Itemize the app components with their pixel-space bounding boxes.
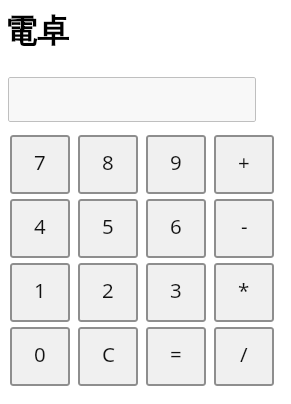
button[interactable]: 4: [10, 199, 70, 258]
staticText: 5: [102, 212, 114, 240]
staticText: *: [238, 276, 250, 304]
staticText: 6: [170, 212, 182, 240]
button[interactable]: 1: [10, 263, 70, 322]
button[interactable]: 9: [146, 135, 206, 194]
staticText: /: [240, 340, 248, 368]
button[interactable]: -: [214, 199, 274, 258]
button[interactable]: 7: [10, 135, 70, 194]
staticText: 電卓: [5, 11, 69, 51]
staticText: 4: [34, 212, 46, 240]
button[interactable]: [8, 77, 256, 122]
button[interactable]: 0: [10, 327, 70, 386]
staticText: 7: [34, 148, 46, 176]
staticText: 2: [102, 276, 114, 304]
button[interactable]: =: [146, 327, 206, 386]
staticText: 8: [102, 148, 114, 176]
staticText: 3: [170, 276, 182, 304]
button[interactable]: +: [214, 135, 274, 194]
staticText: 9: [170, 148, 182, 176]
button[interactable]: 8: [78, 135, 138, 194]
staticText: 0: [34, 340, 46, 368]
button[interactable]: 5: [78, 199, 138, 258]
staticText: 1: [34, 276, 46, 304]
button[interactable]: 6: [146, 199, 206, 258]
staticText: =: [170, 340, 182, 368]
staticText: C: [102, 340, 115, 368]
button[interactable]: 2: [78, 263, 138, 322]
button[interactable]: C: [78, 327, 138, 386]
button[interactable]: /: [214, 327, 274, 386]
staticText: +: [238, 148, 250, 176]
button[interactable]: 3: [146, 263, 206, 322]
staticText: -: [241, 212, 248, 240]
button[interactable]: *: [214, 263, 274, 322]
